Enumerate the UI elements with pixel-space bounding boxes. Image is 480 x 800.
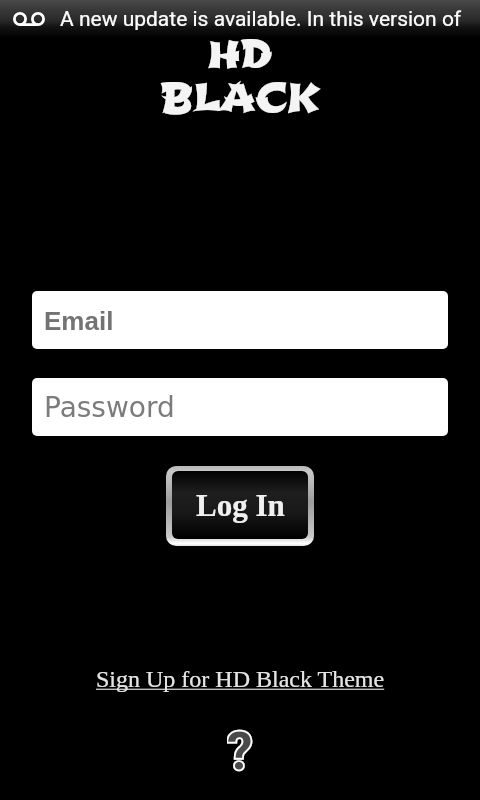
- staticText: ?: [227, 722, 253, 778]
- button[interactable]: Password: [32, 378, 448, 436]
- staticText: Log In: [196, 488, 285, 522]
- button[interactable]: Email: [32, 291, 448, 349]
- staticText: Email: [44, 306, 114, 335]
- button[interactable]: Sign Up for HD Black Theme: [0, 666, 480, 700]
- staticText: ?: [227, 722, 253, 778]
- staticText: Sign Up for HD Black Theme: [96, 666, 385, 693]
- staticText: HD: [0, 31, 480, 80]
- staticText: A new update is available. In this versi…: [60, 7, 462, 32]
- button[interactable]: Help: [212, 722, 268, 778]
- button[interactable]: Log In: [172, 471, 308, 539]
- staticText: BLACK: [0, 73, 480, 125]
- staticText: Password: [44, 391, 175, 424]
